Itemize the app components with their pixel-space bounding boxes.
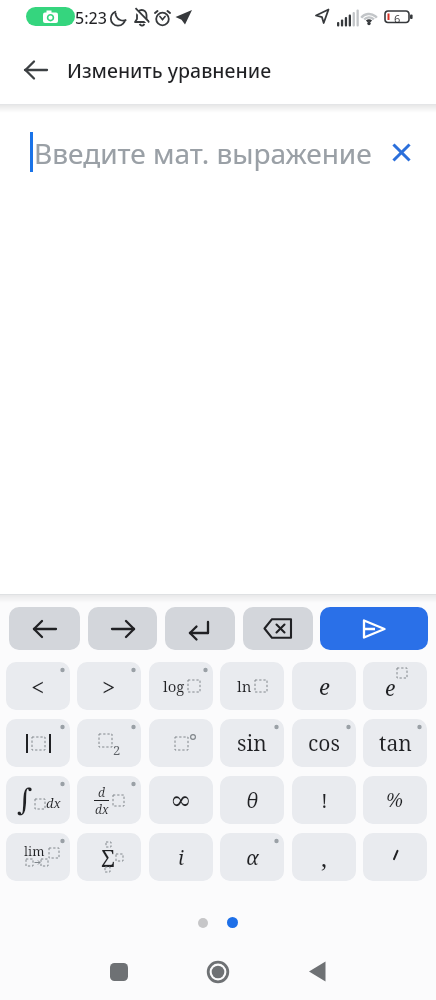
button[interactable] [206,960,230,984]
button[interactable] [363,833,427,881]
staticText: > [102,670,116,703]
button[interactable] [165,607,235,650]
button[interactable]: α [220,833,284,881]
button[interactable] [320,607,428,650]
button[interactable] [24,58,48,82]
button[interactable]: % [363,776,427,824]
staticText: ln [237,676,252,696]
staticText: dx [46,794,61,812]
staticText: Σ [101,842,115,873]
staticText: i [178,844,185,871]
staticText: Введите мат. выражение [34,134,372,172]
staticText: ! [321,787,328,814]
button[interactable]: ∫ [6,776,70,824]
button[interactable] [243,607,313,650]
button[interactable] [149,719,213,767]
button[interactable] [6,719,70,767]
button[interactable]: > [77,662,141,710]
staticText: θ [246,787,259,814]
staticText: % [386,787,404,813]
button[interactable]: < [6,662,70,710]
button[interactable]: 2 [77,719,141,767]
staticText: < [31,670,45,703]
button[interactable] [110,963,128,981]
staticText: 6 [394,11,401,26]
button[interactable]: sin [220,719,284,767]
button[interactable] [0,106,436,186]
button[interactable]: lim [6,833,70,881]
button[interactable]: log [149,662,213,710]
staticText: log [163,676,185,696]
button[interactable]: ! [292,776,356,824]
button[interactable] [393,144,410,161]
button[interactable]: ln [220,662,284,710]
button[interactable] [306,960,328,982]
button[interactable]: tan [363,719,427,767]
staticText: ∞ [170,785,192,815]
staticText: 5:23 [75,7,107,29]
button[interactable]: cos [292,719,356,767]
staticText: lim [24,842,45,860]
staticText: dx [95,801,109,817]
staticText: 2 [113,741,121,759]
button[interactable] [88,607,157,650]
button[interactable]: ∞ [149,776,213,824]
button[interactable]: , [292,833,356,881]
staticText: ∫ [17,782,33,817]
button[interactable]: d [77,776,141,824]
button[interactable]: Σ [77,833,141,881]
staticText: Изменить уравнение [67,57,272,84]
staticText: d [98,784,105,800]
staticText: cos [308,729,340,758]
staticText: α [246,844,259,871]
button[interactable] [9,607,80,650]
staticText: tan [379,729,412,758]
staticText: , [321,841,327,874]
button[interactable]: e [363,662,427,710]
staticText: sin [237,729,267,758]
button[interactable]: θ [220,776,284,824]
button[interactable]: i [149,833,213,881]
staticText: e [385,674,396,703]
staticText: e [319,671,330,701]
button[interactable]: e [292,662,356,710]
